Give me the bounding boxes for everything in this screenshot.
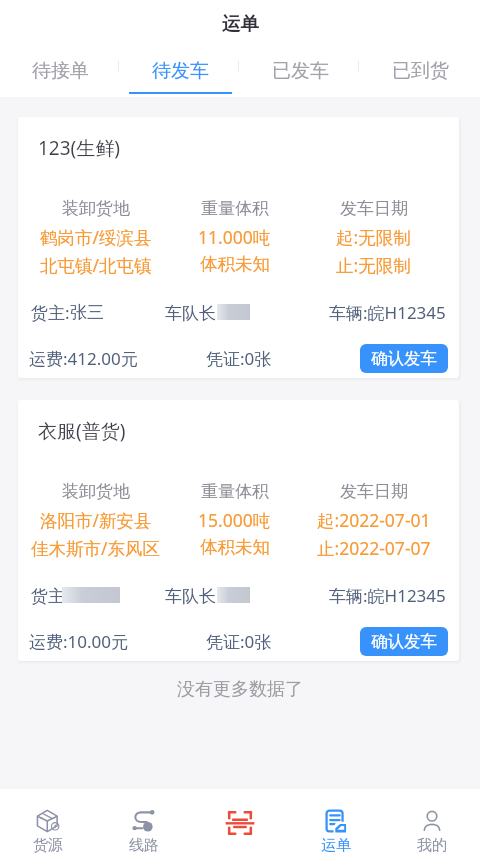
staticText: 重量体积 bbox=[201, 481, 269, 502]
staticText: 15.000吨 bbox=[198, 508, 271, 532]
staticText: 运单 bbox=[222, 12, 259, 35]
staticText: 待接单 bbox=[32, 59, 89, 83]
button[interactable]: 我的 bbox=[384, 789, 480, 854]
staticText: 待发车 bbox=[152, 59, 209, 83]
staticText: 体积未知 bbox=[200, 253, 270, 275]
staticText: 装卸货地 bbox=[62, 198, 130, 219]
button[interactable]: 运单 bbox=[288, 789, 384, 854]
staticText: 车辆:皖H12345 bbox=[329, 301, 446, 323]
staticText: 车队长: bbox=[165, 584, 221, 606]
staticText: 发车日期 bbox=[340, 198, 408, 219]
button[interactable]: 线路 bbox=[96, 789, 192, 854]
staticText: 确认发车 bbox=[371, 348, 437, 369]
staticText: 起:2022-07-01 bbox=[317, 508, 431, 532]
staticText: 已到货 bbox=[392, 59, 449, 83]
button[interactable]: 货源 bbox=[0, 789, 96, 854]
staticText: 123(生鲜) bbox=[38, 135, 121, 161]
button[interactable]: 衣服(普货) bbox=[18, 400, 459, 661]
button[interactable]: 扫一扫 bbox=[192, 789, 288, 854]
staticText: 体积未知 bbox=[200, 536, 270, 558]
staticText: 已发车 bbox=[272, 59, 329, 83]
staticText: 止:无限制 bbox=[336, 253, 411, 277]
button[interactable]: 123(生鲜) bbox=[18, 117, 459, 378]
staticText: 没有更多数据了 bbox=[177, 678, 303, 701]
staticText: 凭证:0张 bbox=[206, 630, 272, 653]
staticText: 线路 bbox=[129, 836, 159, 854]
staticText: 我的 bbox=[417, 836, 447, 854]
staticText: 车队长: bbox=[165, 301, 221, 323]
staticText: 重量体积 bbox=[201, 198, 269, 219]
staticText: 运单 bbox=[321, 836, 351, 854]
staticText: 起:无限制 bbox=[336, 225, 411, 249]
staticText: 止:2022-07-07 bbox=[317, 536, 431, 560]
staticText: 凭证:0张 bbox=[206, 347, 272, 370]
button[interactable]: 确认发车 bbox=[360, 627, 448, 656]
button[interactable]: 待发车 bbox=[120, 47, 240, 97]
staticText: 装卸货地 bbox=[62, 481, 130, 502]
button[interactable]: 确认发车 bbox=[360, 344, 448, 373]
staticText: 运费:10.00元 bbox=[29, 630, 129, 653]
staticText: 车辆:皖H12345 bbox=[329, 584, 446, 606]
staticText: 运费:412.00元 bbox=[29, 347, 138, 370]
staticText: 鹤岗市/绥滨县 bbox=[40, 225, 152, 249]
staticText: 货主: bbox=[31, 301, 70, 323]
staticText: 11.000吨 bbox=[198, 225, 271, 249]
staticText: 货源 bbox=[33, 836, 63, 854]
button[interactable]: 待接单 bbox=[0, 47, 120, 97]
button[interactable]: 已到货 bbox=[360, 47, 480, 97]
staticText: 北屯镇/北屯镇 bbox=[40, 253, 152, 277]
staticText: 货主: bbox=[31, 584, 70, 606]
staticText: 洛阳市/新安县 bbox=[40, 508, 152, 532]
staticText: 佳木斯市/东风区 bbox=[31, 536, 161, 560]
button[interactable]: 已发车 bbox=[240, 47, 360, 97]
staticText: 衣服(普货) bbox=[38, 418, 126, 444]
staticText: 发车日期 bbox=[340, 481, 408, 502]
staticText: 确认发车 bbox=[371, 631, 437, 652]
staticText: 张三 bbox=[70, 302, 104, 323]
